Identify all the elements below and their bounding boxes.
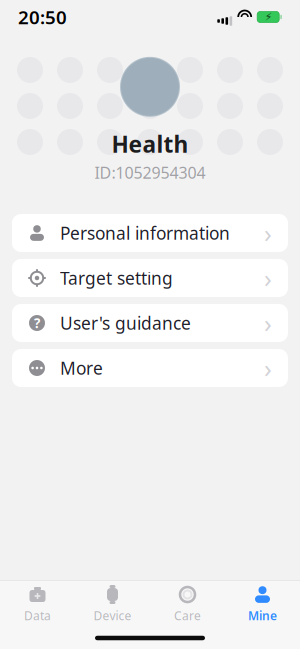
staticText: Health: [111, 129, 188, 159]
button[interactable]: Target setting: [12, 259, 288, 297]
staticText: More: [60, 356, 103, 379]
staticText: Target setting: [60, 266, 173, 289]
button[interactable]: Data: [0, 581, 75, 627]
staticText: Personal information: [60, 221, 230, 244]
button[interactable]: More: [12, 349, 288, 387]
staticText: User's guidance: [60, 311, 191, 334]
staticText: 20:50: [18, 5, 67, 29]
staticText: ›: [264, 351, 272, 385]
staticText: Device: [93, 607, 131, 623]
button[interactable]: ?: [12, 304, 288, 342]
staticText: ⚡︎: [265, 11, 272, 23]
staticText: ?: [34, 314, 40, 332]
staticText: ›: [264, 216, 272, 250]
staticText: ›: [264, 306, 272, 340]
staticText: ›: [264, 261, 272, 295]
button[interactable]: Device: [75, 581, 150, 627]
staticText: ID:1052954304: [94, 162, 205, 183]
button[interactable]: Mine: [225, 581, 300, 627]
button[interactable]: Care: [150, 581, 225, 627]
staticText: Care: [174, 607, 201, 623]
staticText: Mine: [248, 607, 277, 623]
staticText: Data: [24, 607, 51, 623]
button[interactable]: Personal information: [12, 214, 288, 252]
